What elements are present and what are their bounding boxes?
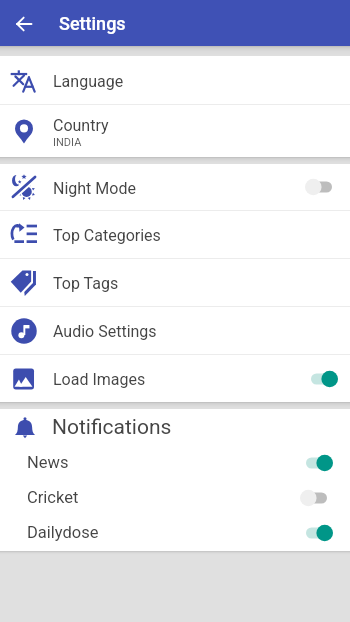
button[interactable]: Country <box>0 105 350 157</box>
button[interactable]: Back <box>8 8 39 39</box>
staticText: Notifications <box>52 415 172 440</box>
button[interactable]: Language <box>0 56 350 105</box>
staticText: News <box>27 453 300 472</box>
staticText: Load Images <box>53 370 146 389</box>
button[interactable]: On <box>300 453 333 473</box>
staticText: Top Categories <box>53 226 161 245</box>
button[interactable]: Off <box>300 488 333 508</box>
button[interactable]: Load Images <box>0 355 350 402</box>
staticText: Top Tags <box>53 274 119 293</box>
staticText: Settings <box>59 13 126 34</box>
button[interactable]: News <box>27 445 333 480</box>
button[interactable]: Audio Settings <box>0 307 350 355</box>
staticText: Audio Settings <box>53 322 157 341</box>
staticText: Cricket <box>27 488 300 507</box>
button[interactable]: Notifications <box>12 409 350 445</box>
button[interactable]: Night Mode <box>0 164 350 211</box>
button[interactable]: On <box>305 369 338 389</box>
staticText: Country <box>53 116 109 135</box>
button[interactable]: Dailydose <box>27 515 333 550</box>
staticText: INDIA <box>53 136 82 149</box>
staticText: Dailydose <box>27 523 300 542</box>
button[interactable]: On <box>300 523 333 543</box>
button[interactable]: Cricket <box>27 480 333 515</box>
button[interactable]: Off <box>305 177 338 197</box>
staticText: Night Mode <box>53 179 136 198</box>
staticText: Language <box>53 72 124 91</box>
button[interactable]: Top Tags <box>0 259 350 307</box>
button[interactable]: Top Categories <box>0 211 350 259</box>
